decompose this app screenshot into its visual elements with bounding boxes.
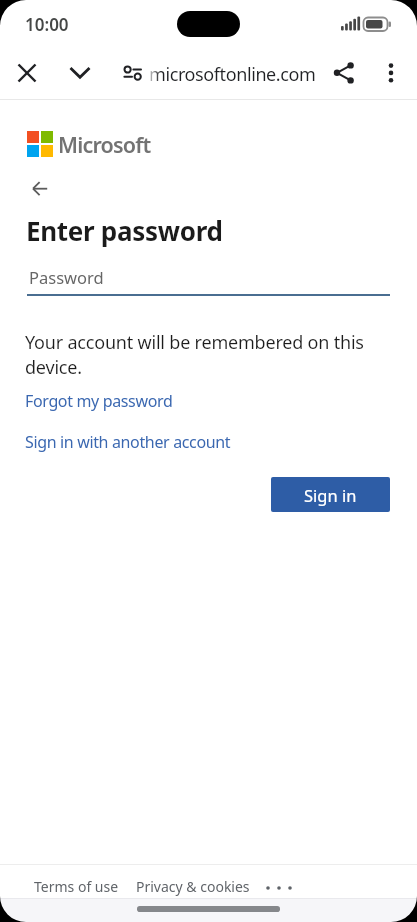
staticText: Sign in with another account [25, 431, 231, 453]
staticText: microsoftonline.com [149, 62, 316, 87]
button[interactable] [66, 59, 94, 87]
staticText: Sign in [304, 484, 357, 506]
staticText: Password [29, 266, 104, 288]
staticText: Enter password [26, 213, 223, 248]
button[interactable]: Sign in with another account [25, 431, 231, 453]
staticText: 10:00 [25, 13, 69, 36]
button[interactable] [262, 877, 296, 895]
staticText: device. [25, 355, 82, 380]
button[interactable] [26, 175, 54, 203]
button[interactable]: Sign in [271, 477, 390, 512]
button[interactable] [13, 59, 41, 87]
staticText: Privacy & cookies [136, 877, 250, 896]
staticText: Terms of use [34, 877, 119, 896]
button[interactable]: Terms of use [34, 877, 119, 896]
button[interactable] [377, 59, 405, 87]
button[interactable]: Privacy & cookies [136, 877, 250, 896]
button[interactable] [118, 59, 146, 87]
staticText: Your account will be remembered on this [25, 330, 364, 355]
staticText: Microsoft [58, 130, 151, 159]
button[interactable] [330, 59, 358, 87]
button[interactable]: Forgot my password [25, 390, 173, 412]
staticText: Forgot my password [25, 390, 173, 412]
